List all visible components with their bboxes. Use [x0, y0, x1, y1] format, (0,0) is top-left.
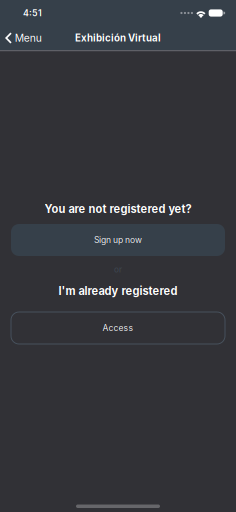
staticText: Menu — [15, 32, 42, 44]
staticText: Access — [102, 323, 133, 333]
staticText: Exhibición Virtual — [75, 32, 161, 44]
staticText: I'm already registered — [58, 284, 177, 298]
staticText: 4:51 — [23, 8, 42, 18]
staticText: You are not registered yet? — [44, 202, 191, 216]
staticText: Sign up now — [94, 235, 142, 245]
button[interactable]: Access — [11, 312, 225, 344]
button[interactable]: Menu — [0, 26, 42, 50]
button[interactable]: Sign up now — [11, 224, 225, 256]
staticText: or — [114, 264, 122, 274]
